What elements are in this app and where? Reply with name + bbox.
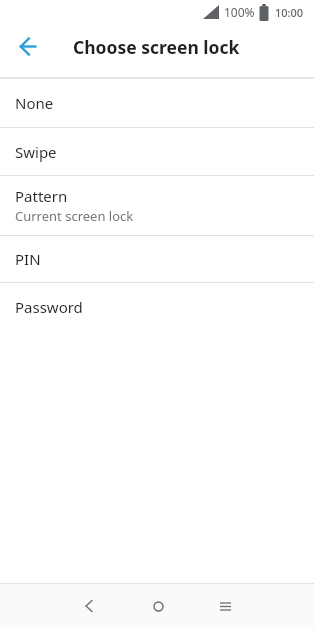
button[interactable]: None xyxy=(0,79,314,127)
staticText: Current screen lock xyxy=(15,207,134,225)
staticText: None xyxy=(15,93,54,113)
staticText: Swipe xyxy=(15,142,57,162)
staticText: 10:00 xyxy=(275,5,304,20)
button[interactable]: Pattern xyxy=(0,176,314,235)
staticText: 100% xyxy=(224,4,255,20)
button[interactable] xyxy=(202,584,248,628)
staticText: Pattern xyxy=(15,186,68,206)
button[interactable]: Password xyxy=(0,283,314,330)
staticText: PIN xyxy=(15,249,41,269)
staticText: Choose screen lock xyxy=(73,35,240,59)
button[interactable] xyxy=(66,584,112,628)
button[interactable] xyxy=(0,24,56,69)
staticText: Password xyxy=(15,297,83,317)
button[interactable]: Swipe xyxy=(0,128,314,175)
button[interactable] xyxy=(135,584,181,628)
button[interactable]: PIN xyxy=(0,236,314,282)
